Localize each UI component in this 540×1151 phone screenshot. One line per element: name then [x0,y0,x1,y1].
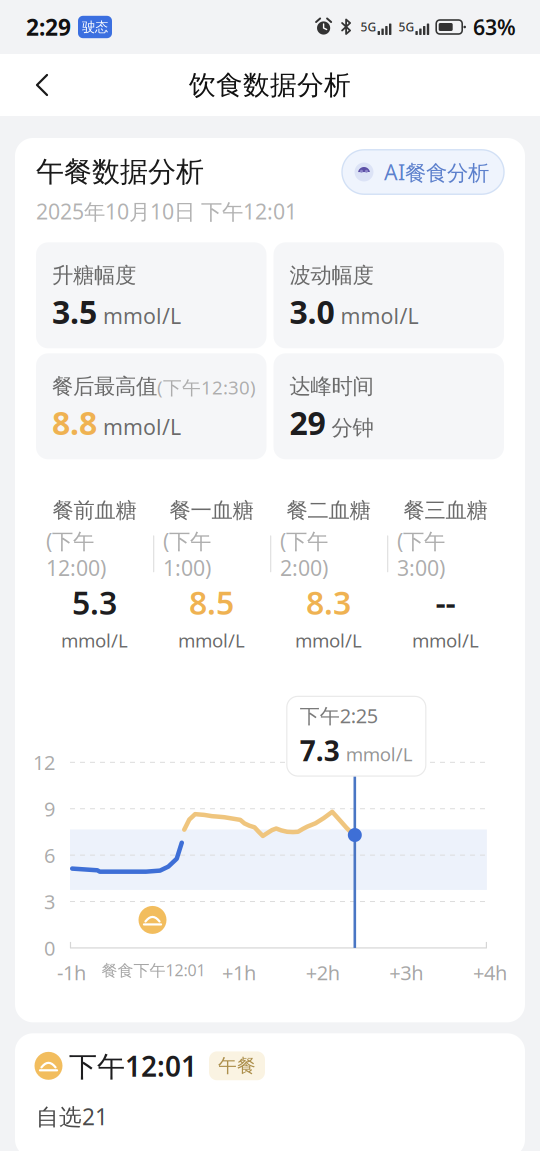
staticText: (下午 [163,527,211,555]
staticText: 8.8 [52,401,97,444]
staticText: mmol/L [178,628,245,653]
staticText: 12:00) [46,554,106,582]
staticText: 0 [44,935,55,961]
staticText: -1h [57,959,86,986]
staticText: 3 [44,888,55,915]
staticText: 波动幅度 [289,262,373,288]
staticText: (下午 [46,527,94,555]
staticText: 分钟 [331,415,373,441]
staticText: 餐三血糖 [403,497,487,523]
staticText: 午餐数据分析 [36,155,204,189]
staticText: 12 [33,749,55,776]
staticText: 3:00) [397,554,445,582]
staticText: 达峰时间 [289,373,373,399]
staticText: 餐后最高值 [52,373,157,399]
staticText: 5G [398,19,414,35]
staticText: +1h [222,959,256,986]
staticText: 下午2:25 [300,702,378,729]
staticText: -- [435,581,455,624]
staticText: 8.5 [189,581,234,624]
button[interactable]: AI餐食分析 [342,150,504,194]
staticText: 7.3 [300,732,340,769]
staticText: 8.3 [306,581,351,624]
staticText: 3.0 [289,290,334,333]
staticText: mmol/L [295,628,362,653]
staticText: 6 [44,842,55,868]
staticText: (下午 [397,527,445,555]
staticText: 2:29 [26,12,71,42]
staticText: +4h [473,959,507,986]
staticText: mmol/L [103,413,181,441]
staticText: 升糖幅度 [52,262,136,288]
staticText: 下午12:01 [69,1047,197,1084]
staticText: 29 [289,401,325,444]
button[interactable]: Back [14,59,70,111]
staticText: 5G [361,19,377,35]
staticText: 驶态 [82,19,108,35]
staticText: 1:00) [163,554,211,582]
staticText: mmol/L [346,742,413,766]
staticText: mmol/L [340,302,418,330]
staticText: 2025年10月10日 下午12:01 [36,197,297,225]
staticText: mmol/L [61,628,128,653]
staticText: 餐食下午12:01 [101,959,205,980]
staticText: AI餐食分析 [384,158,489,186]
staticText: 餐前血糖 [52,497,136,523]
staticText: (下午 [280,527,328,555]
staticText: 5.3 [72,581,117,624]
staticText: 饮食数据分析 [189,69,351,101]
staticText: 餐二血糖 [286,497,370,523]
staticText: 2:00) [280,554,328,582]
staticText: +3h [389,959,423,986]
staticText: 9 [44,795,55,822]
staticText: mmol/L [412,628,479,653]
staticText: +2h [306,959,340,986]
staticText: mmol/L [103,302,181,330]
staticText: 63% [473,13,516,41]
staticText: 3.5 [52,290,97,333]
staticText: 午餐 [218,1054,256,1077]
staticText: 自选21 [36,1101,108,1131]
staticText: (下午12:30) [157,375,256,400]
staticText: 餐一血糖 [169,497,253,523]
